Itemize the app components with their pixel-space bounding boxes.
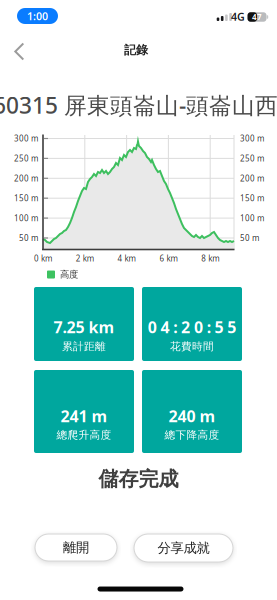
staticText: 高度 [60,269,78,280]
staticText: 200 m [240,173,264,184]
staticText: 累計距離 [62,340,106,353]
staticText: 150 m [14,193,38,203]
button[interactable]: 離開 [35,534,117,561]
staticText: 總爬升高度 [56,428,111,441]
staticText: 50 m [19,233,38,243]
staticText: 記錄 [124,43,148,57]
staticText: 250 m [14,153,38,164]
staticText: 1:00 [27,9,48,23]
staticText: 4 km [118,253,136,264]
staticText: 100 m [14,213,38,223]
button[interactable]: Back [12,41,26,61]
staticText: 300 m [240,133,264,144]
staticText: 7.25 km [53,316,114,338]
staticText: 04:20:55 [148,316,236,338]
staticText: 150 m [240,193,264,203]
button[interactable]: 分享成就 [134,534,233,562]
staticText: 離開 [63,539,89,556]
staticText: 6 km [159,253,177,264]
staticText: 250 m [240,153,264,164]
staticText: 0 km [34,253,52,264]
staticText: 240 m [168,405,215,427]
staticText: 儲存完成 [98,467,178,491]
staticText: 100 m [240,213,264,223]
staticText: 8 km [201,253,219,264]
staticText: 4G [231,9,245,24]
staticText: 分享成就 [157,540,209,556]
staticText: 241 m [60,405,107,427]
staticText: 20160315 屏東頭崙山-頭崙山西峰 [0,90,277,120]
staticText: 300 m [14,133,38,144]
staticText: 47 [252,12,262,22]
staticText: 花費時間 [170,340,214,353]
staticText: 2 km [76,253,94,264]
staticText: 總下降高度 [164,428,219,441]
staticText: 200 m [14,173,38,184]
staticText: 50 m [240,233,259,243]
